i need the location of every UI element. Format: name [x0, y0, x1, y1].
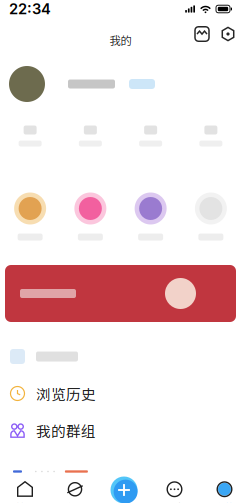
- button[interactable]: Create: [109, 475, 139, 503]
- button[interactable]: [0, 113, 60, 159]
- button[interactable]: 我的: [200, 485, 241, 503]
- button[interactable]: [120, 187, 181, 245]
- button[interactable]: [181, 187, 241, 245]
- button[interactable]: 发现: [51, 485, 99, 503]
- staticText: 我的: [109, 32, 131, 48]
- button[interactable]: [120, 113, 181, 159]
- button[interactable]: Settings: [218, 24, 238, 44]
- button[interactable]: 消息: [150, 485, 198, 503]
- staticText: 浏览历史: [36, 383, 96, 404]
- button[interactable]: [0, 187, 60, 245]
- button[interactable]: [60, 187, 120, 245]
- button[interactable]: 我的群组: [0, 412, 241, 449]
- button[interactable]: [60, 113, 120, 159]
- button[interactable]: [181, 113, 241, 159]
- button[interactable]: [0, 265, 241, 322]
- button[interactable]: [0, 63, 241, 105]
- button[interactable]: 首页: [1, 485, 49, 503]
- button[interactable]: Shop: [192, 24, 212, 44]
- staticText: 22:34: [9, 0, 51, 18]
- staticText: 我的群组: [36, 420, 96, 441]
- button[interactable]: [0, 338, 241, 375]
- button[interactable]: 浏览历史: [0, 375, 241, 412]
